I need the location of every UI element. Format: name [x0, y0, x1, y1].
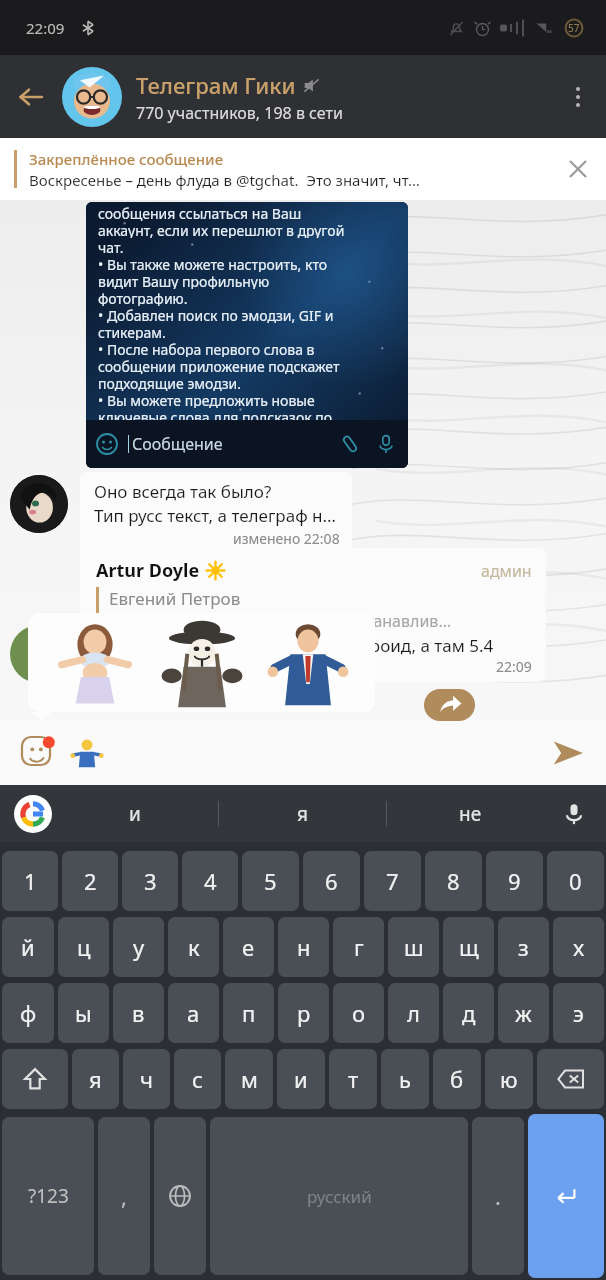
button[interactable]: д	[443, 983, 494, 1043]
button[interactable]: к	[168, 917, 219, 977]
button[interactable]: а	[168, 983, 219, 1043]
staticText: с	[192, 1064, 203, 1094]
button[interactable]: м	[225, 1049, 273, 1109]
button[interactable]: ч	[123, 1049, 170, 1109]
staticText: е	[242, 932, 255, 962]
button[interactable]: у	[113, 917, 164, 977]
button[interactable]: Back	[0, 66, 62, 128]
staticText: щ	[459, 932, 479, 962]
button[interactable]: ,	[98, 1117, 150, 1275]
button[interactable]: я	[219, 785, 386, 842]
button[interactable]: Artur Doyle	[80, 548, 546, 682]
staticText: к	[188, 932, 200, 962]
button[interactable]: 4	[182, 851, 238, 911]
staticText: и	[129, 801, 141, 827]
button[interactable]: х	[553, 917, 604, 977]
button[interactable]: щ	[443, 917, 494, 977]
staticText: ц	[77, 932, 91, 962]
button[interactable]: Stickers	[20, 735, 56, 771]
button[interactable]: б	[433, 1049, 481, 1109]
button[interactable]: Enter	[528, 1114, 604, 1278]
button[interactable]: н	[278, 917, 329, 977]
staticText: Телеграм Гики	[136, 70, 296, 100]
staticText: не	[459, 801, 482, 827]
button[interactable]: э	[553, 983, 604, 1043]
button[interactable]: т	[329, 1049, 377, 1109]
button[interactable]: ю	[485, 1049, 533, 1109]
button[interactable]: п	[223, 983, 274, 1043]
button[interactable]: и	[277, 1049, 325, 1109]
button[interactable]: ш	[388, 917, 439, 977]
button[interactable]: ы	[58, 983, 109, 1043]
button[interactable]: Оно всегда так было?	[80, 472, 352, 554]
staticText: й	[21, 932, 35, 962]
button[interactable]: з	[498, 917, 549, 977]
staticText: видит Вашу профильную	[98, 272, 270, 289]
staticText: • После набора первого слова в	[98, 340, 315, 357]
staticText: ь	[399, 1064, 411, 1094]
button[interactable]: с	[174, 1049, 221, 1109]
staticText: .	[495, 1181, 501, 1211]
staticText: фотографию.	[98, 289, 188, 306]
button[interactable]: 0	[547, 851, 604, 911]
staticText: р	[297, 998, 311, 1028]
staticText: русский	[307, 1185, 372, 1208]
button[interactable]	[537, 1049, 604, 1109]
button[interactable]: Emoji shrug	[70, 736, 104, 770]
staticText: чё-т на нём прилетает обнова, устанавлив…	[109, 610, 452, 632]
button[interactable]: Voice input	[554, 794, 594, 834]
button[interactable]: й	[2, 917, 54, 977]
button[interactable]: Sticker shrug man	[264, 619, 352, 707]
button[interactable]: Sticker shrug girl	[51, 619, 139, 707]
staticText: сообщения ссылаться на Ваш	[98, 204, 302, 221]
button[interactable]: 2	[62, 851, 118, 911]
staticText: т	[348, 1064, 359, 1094]
button[interactable]: 1	[2, 851, 58, 911]
button[interactable]: не	[387, 785, 554, 842]
staticText: о	[352, 998, 366, 1028]
staticText: и	[294, 1064, 308, 1094]
staticText: • Вы также можете настроить, кто	[98, 255, 328, 272]
button[interactable]: Google	[14, 795, 52, 833]
staticText: 22:09	[26, 18, 65, 38]
button[interactable]: ?123	[2, 1117, 94, 1275]
staticText: ч	[140, 1064, 153, 1094]
button[interactable]: 9	[486, 851, 543, 911]
button[interactable]: Avatar	[10, 475, 68, 533]
button[interactable]: 8	[425, 851, 482, 911]
button[interactable]	[2, 1049, 68, 1109]
button[interactable]: .	[472, 1117, 524, 1275]
staticText: ключевые слова для подсказок по	[98, 408, 333, 425]
button[interactable]: Close pinned message	[550, 141, 606, 197]
button[interactable]: 3	[122, 851, 178, 911]
button[interactable]: р	[278, 983, 329, 1043]
button[interactable]: л	[388, 983, 439, 1043]
button[interactable]	[154, 1117, 206, 1275]
button[interactable]: ж	[498, 983, 549, 1043]
staticText: ю	[500, 1064, 518, 1094]
button[interactable]: Sticker mask	[156, 617, 248, 709]
button[interactable]: Send	[540, 725, 596, 781]
staticText: б	[450, 1064, 464, 1094]
button[interactable]: More options	[550, 69, 606, 125]
staticText: 57	[568, 21, 580, 35]
button[interactable]: и	[52, 785, 218, 842]
button[interactable]: ц	[58, 917, 109, 977]
button[interactable]: в	[113, 983, 164, 1043]
staticText: х	[573, 932, 585, 962]
staticText: в	[132, 998, 145, 1028]
button[interactable]: 7	[364, 851, 421, 911]
button[interactable]: ф	[2, 983, 54, 1043]
button[interactable]: ь	[381, 1049, 429, 1109]
button[interactable]: е	[223, 917, 274, 977]
button[interactable]: о	[333, 983, 384, 1043]
button[interactable]: г	[333, 917, 384, 977]
button[interactable]: сообщения ссылаться на Ваш	[86, 202, 408, 468]
button[interactable]: Forward	[424, 689, 475, 721]
button[interactable]: 5	[242, 851, 299, 911]
staticText: админ	[481, 560, 532, 582]
staticText: ы	[75, 998, 92, 1028]
button[interactable]: я	[72, 1049, 119, 1109]
button[interactable]: 6	[303, 851, 360, 911]
button[interactable]: русский	[210, 1117, 468, 1275]
